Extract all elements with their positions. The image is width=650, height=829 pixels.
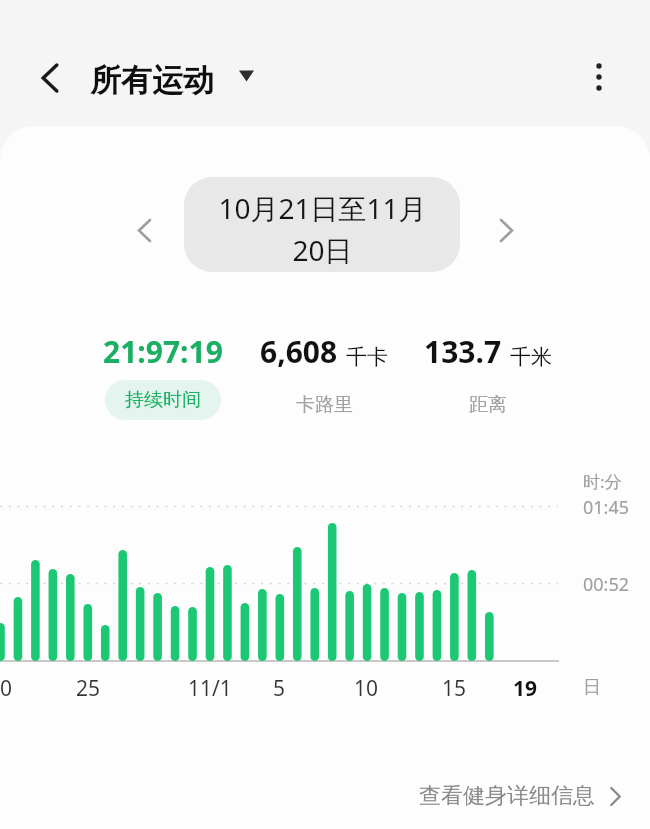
staticText: 千米: [510, 344, 552, 370]
staticText: 11/1: [188, 674, 232, 703]
button[interactable]: 21:97:19: [63, 331, 263, 420]
button[interactable]: 6,608: [224, 331, 424, 417]
staticText: 19: [513, 674, 538, 703]
staticText: 25: [76, 674, 101, 703]
button[interactable]: Back: [26, 54, 74, 102]
staticText: 10月21日至11月 20日: [218, 189, 427, 269]
button[interactable]: 所有运动: [86, 57, 258, 104]
staticText: 日: [583, 676, 601, 699]
staticText: 20: [0, 674, 13, 703]
button[interactable]: 查看健身详细信息: [411, 774, 632, 818]
button[interactable]: Previous period: [120, 206, 168, 254]
staticText: 所有运动: [90, 61, 214, 100]
staticText: 千卡: [346, 344, 388, 370]
staticText: 6,608: [260, 331, 338, 372]
staticText: 15: [442, 674, 467, 703]
staticText: 持续时间: [125, 388, 201, 412]
staticText: 查看健身详细信息: [419, 782, 595, 810]
staticText: 01:45: [583, 495, 630, 520]
staticText: 00:52: [583, 572, 630, 597]
staticText: 5: [273, 674, 286, 703]
staticText: 10: [354, 674, 379, 703]
staticText: 21:97:19: [103, 331, 223, 372]
button[interactable]: 10月21日至11月 20日: [184, 177, 460, 272]
button[interactable]: Next period: [482, 206, 530, 254]
staticText: 距离: [469, 393, 507, 417]
staticText: 时:分: [583, 470, 622, 493]
staticText: 133.7: [424, 331, 502, 372]
staticText: 卡路里: [296, 393, 353, 417]
button[interactable]: More options: [575, 53, 623, 101]
button[interactable]: 133.7: [388, 331, 588, 417]
